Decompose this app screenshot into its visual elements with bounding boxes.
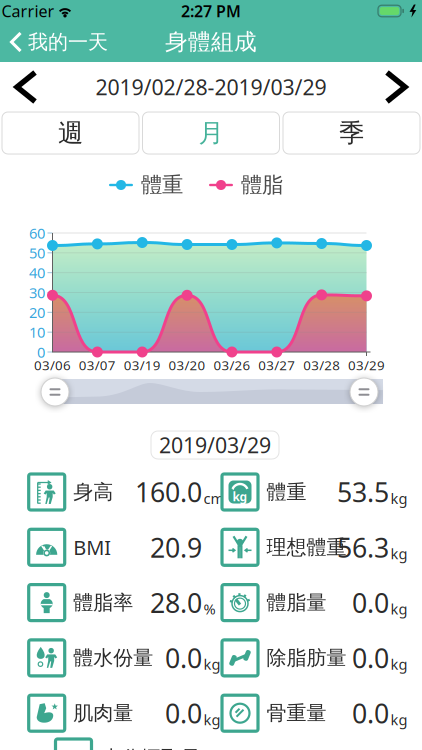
button[interactable]: 上一個月: [7, 63, 44, 111]
staticText: 2:27 PM: [181, 0, 241, 22]
staticText: 53.5: [337, 474, 389, 510]
staticText: 水分攝取量: [101, 746, 201, 750]
staticText: 0: [37, 342, 45, 362]
staticText: Carrier: [1, 0, 54, 22]
staticText: 體脂量: [266, 590, 326, 615]
staticText: kg: [390, 710, 407, 729]
staticText: 體脂: [241, 172, 283, 198]
staticText: 體重: [266, 480, 306, 504]
button[interactable]: 範圍滑桿: [41, 378, 69, 406]
staticText: 身高: [73, 480, 113, 504]
staticText: 2019/02/28-2019/03/29: [95, 73, 326, 101]
staticText: 0.0: [352, 695, 389, 731]
staticText: 0.0: [165, 640, 202, 676]
staticText: 月: [198, 117, 223, 148]
staticText: 03/19: [124, 356, 161, 374]
staticText: 0.0: [352, 640, 389, 676]
staticText: 骨重量: [266, 701, 326, 725]
staticText: 50: [29, 243, 45, 263]
staticText: 03/20: [169, 356, 206, 374]
staticText: kg: [232, 488, 247, 504]
staticText: kg: [390, 544, 407, 563]
staticText: kg: [203, 654, 220, 674]
staticText: 03/29: [348, 356, 385, 374]
staticText: 0.0: [165, 695, 202, 731]
staticText: BMI: [73, 534, 111, 561]
button[interactable]: 範圍滑桿: [350, 378, 378, 406]
staticText: 56.3: [337, 530, 389, 565]
staticText: kg: [390, 488, 407, 508]
button[interactable]: 月: [142, 112, 279, 154]
staticText: 體脂率: [73, 590, 133, 615]
button[interactable]: 季: [283, 112, 420, 154]
staticText: 28.0: [150, 585, 202, 620]
staticText: kg: [390, 654, 407, 674]
staticText: 體重: [141, 172, 183, 198]
staticText: 03/27: [258, 356, 295, 374]
button[interactable]: 下一個月: [377, 63, 414, 111]
staticText: 03/26: [213, 356, 250, 374]
staticText: 肌肉量: [73, 701, 133, 725]
staticText: 體水份量: [73, 646, 153, 670]
staticText: 30: [29, 283, 45, 302]
button[interactable]: 返回 我的一天: [10, 23, 108, 61]
staticText: 03/06: [34, 356, 71, 374]
staticText: kg: [203, 710, 220, 729]
staticText: 160.0: [135, 474, 202, 510]
staticText: 週: [58, 117, 83, 148]
button[interactable]: 週: [2, 112, 139, 154]
staticText: 我的一天: [28, 30, 108, 54]
staticText: 20: [29, 303, 45, 322]
staticText: 60: [29, 223, 45, 243]
staticText: cm: [203, 488, 224, 508]
staticText: 身體組成: [165, 28, 257, 56]
staticText: 除脂肪量: [266, 646, 346, 670]
staticText: kg: [390, 599, 407, 619]
staticText: 10: [29, 322, 45, 342]
staticText: 0.0: [352, 585, 389, 620]
staticText: 20.9: [150, 530, 202, 565]
staticText: 季: [339, 117, 364, 148]
staticText: 03/07: [79, 356, 116, 374]
staticText: %: [203, 599, 215, 619]
staticText: 03/28: [303, 356, 340, 374]
staticText: 2019/03/29: [159, 431, 271, 459]
staticText: 理想體重: [266, 535, 346, 560]
staticText: 40: [29, 263, 45, 282]
